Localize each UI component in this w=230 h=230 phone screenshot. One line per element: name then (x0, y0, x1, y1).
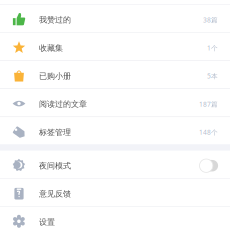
button[interactable]: 标签管理 (0, 117, 230, 144)
staticText: 148个 (199, 128, 218, 137)
button[interactable]: 夜间模式 (0, 151, 230, 178)
staticText: 1个 (207, 43, 218, 52)
button[interactable]: 我赞过的 (0, 5, 230, 32)
button[interactable]: 收藏集 (0, 33, 230, 60)
staticText: 设置 (39, 217, 55, 227)
staticText: 夜间模式 (39, 161, 71, 171)
staticText: 187篇 (199, 100, 218, 109)
button[interactable]: 阅读过的文章 (0, 89, 230, 116)
staticText: 收藏集 (39, 43, 63, 53)
staticText: 已购小册 (39, 71, 71, 81)
staticText: 标签管理 (39, 127, 71, 137)
staticText: 我赞过的 (39, 15, 71, 25)
button[interactable]: 设置 (0, 207, 230, 230)
staticText: 阅读过的文章 (39, 99, 87, 109)
staticText: 38篇 (203, 15, 218, 24)
staticText: 意见反馈 (39, 189, 71, 199)
button[interactable]: 意见反馈 (0, 179, 230, 206)
button[interactable]: 已购小册 (0, 61, 230, 88)
staticText: 5本 (207, 72, 218, 80)
